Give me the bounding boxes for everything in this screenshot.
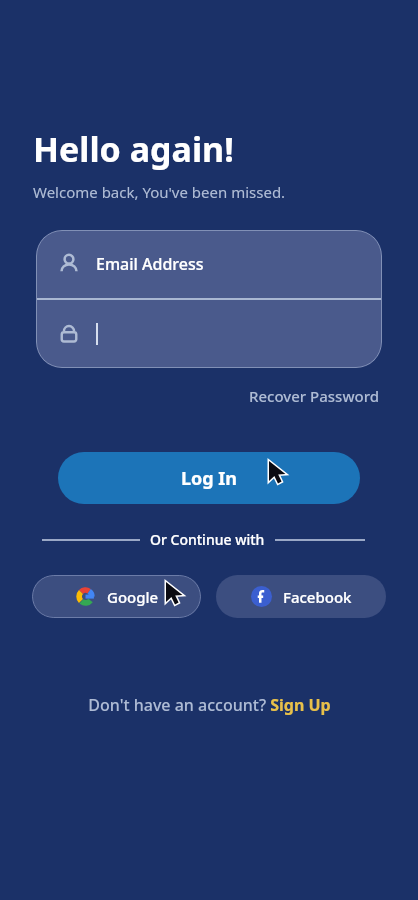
- button[interactable]: Google: [32, 575, 201, 618]
- staticText: Don't have an account? Sign Up: [88, 694, 331, 716]
- staticText: Hello again!: [33, 126, 234, 172]
- other: Pointer: [165, 581, 189, 605]
- button[interactable]: Recover Password: [245, 382, 384, 410]
- button[interactable]: Log In: [58, 452, 360, 504]
- staticText: Facebook: [283, 587, 352, 607]
- staticText: Recover Password: [249, 386, 380, 406]
- staticText: Google: [107, 587, 159, 607]
- staticText: Or Continue with: [150, 530, 265, 549]
- staticText: Welcome back, You've been missed.: [33, 182, 286, 202]
- button[interactable]: Email Address: [36, 230, 382, 298]
- staticText: Email Address: [96, 253, 204, 275]
- button[interactable]: Don't have an account? Sign Up: [82, 688, 337, 722]
- button[interactable]: [36, 300, 382, 368]
- staticText: Log In: [181, 466, 238, 491]
- button[interactable]: Facebook: [216, 575, 386, 618]
